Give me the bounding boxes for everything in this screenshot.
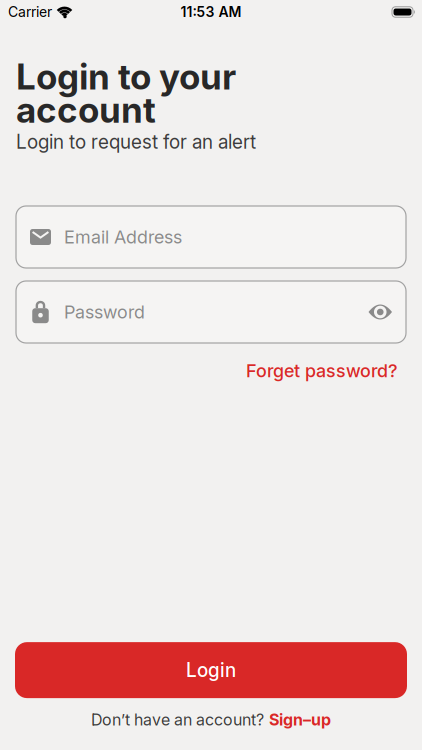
button[interactable]: Don’t have an account? (91, 710, 331, 729)
staticText: Login (186, 659, 236, 681)
staticText: Sign–up (269, 710, 331, 729)
staticText: Login to request for an alert (16, 131, 256, 153)
button[interactable]: Email Address (0, 206, 422, 268)
staticText: Login to your (16, 56, 236, 97)
staticText: Forget password? (246, 360, 398, 381)
button[interactable]: Login (15, 642, 407, 698)
staticText: account (16, 89, 156, 131)
staticText: 11:53 AM (180, 4, 241, 20)
staticText: Carrier (8, 4, 52, 20)
staticText: Don’t have an account? (91, 710, 264, 729)
button[interactable]: Password (0, 281, 422, 343)
button[interactable]: Forget password? (246, 360, 398, 381)
button[interactable]: Show password (368, 302, 392, 321)
staticText: Password (64, 301, 145, 323)
staticText: Email Address (64, 226, 182, 248)
